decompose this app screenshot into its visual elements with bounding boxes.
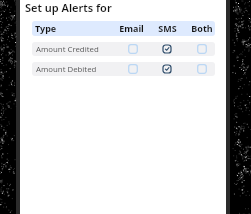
staticText: SMS: [158, 22, 177, 34]
button[interactable]: [32, 62, 215, 76]
button[interactable]: [32, 42, 215, 56]
button[interactable]: Not selected: [126, 62, 140, 76]
button[interactable]: Selected: [160, 42, 174, 56]
button[interactable]: Selected: [160, 62, 174, 76]
button[interactable]: Not selected: [195, 62, 209, 76]
button[interactable]: [32, 21, 215, 36]
button[interactable]: Not selected: [126, 42, 140, 56]
staticText: Type: [35, 22, 57, 34]
staticText: Amount Credited: [36, 44, 99, 55]
staticText: Set up Alerts for: [25, 0, 112, 15]
staticText: Email: [119, 22, 144, 34]
staticText: Amount Debited: [36, 64, 97, 75]
button[interactable]: Not selected: [195, 42, 209, 56]
staticText: Both: [191, 22, 213, 34]
